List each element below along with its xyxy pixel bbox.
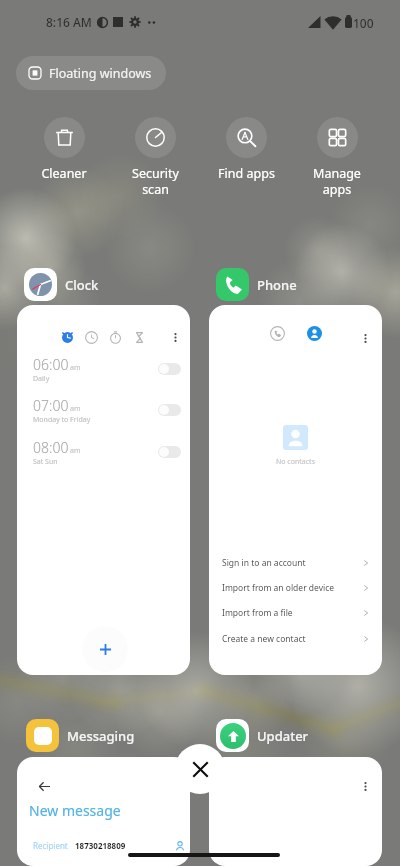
button[interactable]: Back [17,757,190,866]
button[interactable]: Messaging [26,719,135,752]
staticText: Monday to Friday [33,415,91,425]
button[interactable]: Close all [175,744,225,794]
staticText: Floating windows [49,65,152,82]
button[interactable]: Security scan [110,117,200,197]
button[interactable]: Phone [216,268,297,301]
staticText: Sat Sun [33,457,58,467]
staticText: Updater [257,727,309,745]
button[interactable]: Clock [24,268,99,301]
staticText: Daily [33,374,50,384]
staticText: Manage apps [313,165,361,197]
staticText: am [70,404,81,414]
staticText: am [70,446,81,456]
button[interactable]: 08:00 [17,437,190,467]
button[interactable]: Back [33,775,55,797]
staticText: 18730218809 [75,840,126,851]
staticText: 06:00 [33,355,69,374]
button[interactable]: Import from an older device [222,577,369,599]
staticText: 100 [353,15,374,31]
button[interactable] [209,757,382,866]
button[interactable]: No contacts [209,305,382,675]
button[interactable]: 07:00 [17,395,190,425]
staticText: Recipient [33,840,68,851]
staticText: Create a new contact [222,633,306,645]
staticText: Clock [65,276,99,294]
staticText: Cleaner [41,165,87,182]
button[interactable]: Create a new contact [222,628,369,650]
button[interactable]: Manage apps [292,117,382,197]
staticText: am [70,363,81,373]
button[interactable]: Floating windows [16,56,166,90]
button[interactable]: Import from a file [222,602,369,624]
button[interactable]: Find apps [201,117,291,182]
button[interactable]: Updater [216,719,309,752]
button[interactable]: Toggle alarm [158,404,181,416]
button[interactable]: 06:00 [17,305,190,675]
button[interactable]: 06:00 [17,354,190,384]
staticText: New message [29,801,121,820]
staticText: Sign in to an account [222,557,306,569]
button[interactable]: Sign in to an account [222,552,369,574]
button[interactable]: Toggle alarm [158,446,181,458]
staticText: 08:00 [33,438,69,457]
button[interactable]: Toggle alarm [158,363,181,375]
staticText: Security scan [132,165,179,197]
staticText: Import from a file [222,607,293,619]
button[interactable]: Cleaner [19,117,109,182]
staticText: Messaging [67,727,135,745]
staticText: 07:00 [33,396,69,415]
staticText: Phone [257,276,297,294]
staticText: 8:16 AM [46,14,92,30]
button[interactable]: Add alarm [82,626,128,672]
staticText: Find apps [218,165,275,182]
staticText: No contacts [276,457,315,467]
staticText: Import from an older device [222,582,335,594]
